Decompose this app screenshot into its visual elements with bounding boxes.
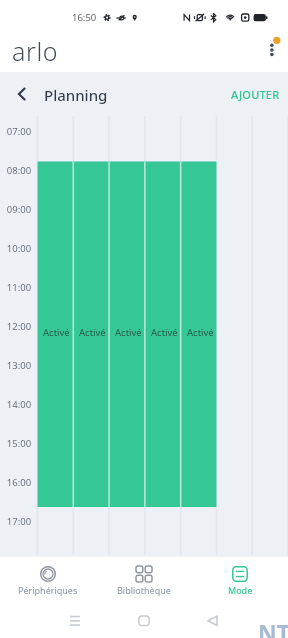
staticText: 11:00	[0, 281, 38, 294]
staticText: Planning	[44, 85, 108, 105]
button[interactable]: Back	[8, 72, 36, 116]
staticText: 08:00	[0, 164, 38, 177]
staticText: 16:00	[0, 476, 38, 489]
staticText: 14:00	[0, 398, 38, 411]
button[interactable]: AJOUTER	[223, 72, 288, 116]
staticText: 16:50	[72, 11, 97, 24]
staticText: Activé	[79, 326, 106, 339]
staticText: AJOUTER	[231, 87, 280, 102]
staticText: 09:00	[0, 203, 38, 216]
staticText: 13:00	[0, 359, 38, 372]
staticText: Mode	[228, 584, 253, 596]
button[interactable]: Activé	[146, 326, 182, 339]
button[interactable]: More options	[256, 28, 288, 72]
button[interactable]: Périphériques	[0, 557, 96, 605]
staticText: Activé	[115, 326, 142, 339]
button[interactable]: Activé	[110, 326, 146, 339]
staticText: Activé	[187, 326, 214, 339]
button[interactable]: Activé	[74, 326, 110, 339]
staticText: NT	[258, 617, 288, 638]
staticText: Bibliothèque	[117, 584, 171, 596]
staticText: 17:00	[0, 515, 38, 528]
staticText: Périphériques	[18, 584, 78, 596]
staticText: Activé	[151, 326, 178, 339]
staticText: 12:00	[0, 320, 38, 333]
staticText: 07:00	[0, 125, 38, 138]
staticText: Activé	[43, 326, 70, 339]
staticText: 15:00	[0, 437, 38, 450]
staticText: 10:00	[0, 242, 38, 255]
button[interactable]: Mode	[192, 557, 288, 605]
button[interactable]: Activé	[38, 326, 74, 339]
button[interactable]: Bibliothèque	[96, 557, 192, 605]
staticText: arlo	[12, 34, 59, 68]
button[interactable]: Activé	[182, 326, 218, 339]
